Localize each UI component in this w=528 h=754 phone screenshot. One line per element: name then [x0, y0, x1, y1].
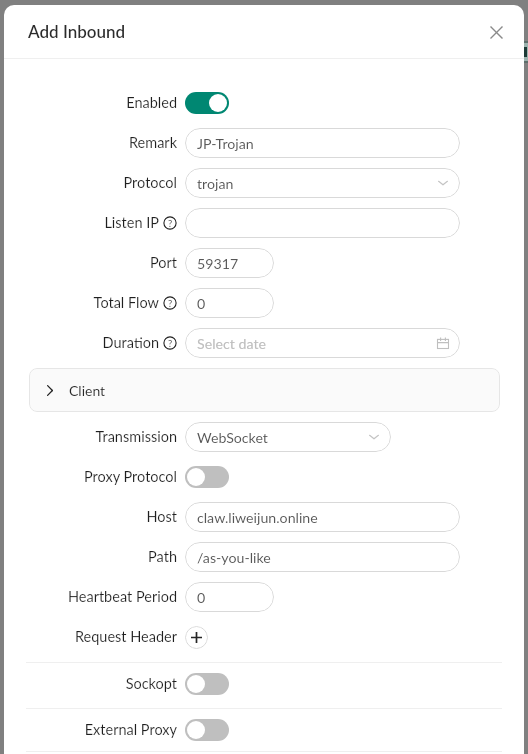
button[interactable]: Help — [163, 296, 177, 310]
staticText: Port — [149, 254, 177, 271]
button[interactable]: Select date — [185, 328, 460, 358]
button[interactable]: trojan — [185, 168, 460, 198]
staticText: Total Flow — [93, 294, 159, 311]
staticText: claw.liweijun.online — [197, 509, 318, 526]
button[interactable]: 0 — [185, 288, 274, 318]
button[interactable]: 0 — [185, 582, 274, 612]
staticText: Client — [69, 382, 106, 399]
button[interactable]: Proxy Protocol — [185, 466, 229, 488]
staticText: Remark — [128, 134, 177, 151]
button[interactable]: /as-you-like — [185, 542, 460, 572]
staticText: Enabled — [126, 94, 177, 111]
staticText: Heartbeat Period — [67, 588, 177, 605]
button[interactable]: Client — [29, 368, 500, 412]
staticText: Duration — [102, 334, 159, 351]
button[interactable]: WebSocket — [185, 422, 391, 452]
staticText: Host — [146, 508, 177, 525]
button[interactable]: External Proxy — [185, 719, 229, 741]
staticText: trojan — [197, 175, 234, 192]
staticText: JP-Trojan — [197, 135, 254, 152]
staticText: /as-you-like — [197, 549, 271, 566]
staticText: 59317 — [197, 255, 239, 272]
staticText: Protocol — [123, 174, 177, 191]
staticText: Sockopt — [125, 675, 177, 692]
staticText: ? — [168, 298, 173, 309]
button[interactable]: Close — [476, 12, 516, 52]
button[interactable]: claw.liweijun.online — [185, 502, 460, 532]
button[interactable]: JP-Trojan — [185, 128, 460, 158]
staticText: 0 — [197, 295, 206, 312]
button[interactable]: Add request header — [185, 626, 208, 649]
staticText: WebSocket — [197, 429, 268, 446]
staticText: Select date — [197, 335, 266, 352]
staticText: External Proxy — [84, 721, 177, 738]
staticText: Add Inbound — [28, 21, 126, 41]
staticText: Request Header — [74, 628, 177, 645]
staticText: Transmission — [95, 428, 177, 445]
staticText: 0 — [197, 589, 206, 606]
button[interactable]: Help — [163, 216, 177, 230]
button[interactable]: Enabled — [185, 92, 229, 114]
staticText: Path — [148, 548, 177, 565]
staticText: ? — [168, 338, 173, 349]
button[interactable]: Add Inbound — [14, 14, 148, 48]
staticText: Listen IP — [104, 214, 159, 231]
staticText: Proxy Protocol — [84, 468, 177, 485]
staticText: ? — [168, 218, 173, 229]
button[interactable]: Sockopt — [185, 673, 229, 695]
button[interactable]: 59317 — [185, 248, 274, 278]
button[interactable]: Listen IP — [185, 208, 460, 238]
button[interactable]: Help — [163, 336, 177, 350]
